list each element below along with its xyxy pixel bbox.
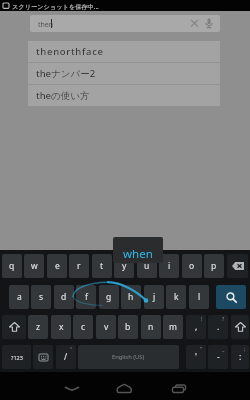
staticText: _ — [222, 346, 225, 353]
button[interactable]: e — [47, 254, 67, 278]
button[interactable]: - — [208, 345, 228, 369]
staticText: ; — [244, 346, 246, 353]
button[interactable]: English (US) — [78, 345, 179, 369]
staticText: e — [55, 260, 60, 272]
button[interactable]: then — [30, 15, 220, 32]
staticText: d — [61, 291, 67, 303]
staticText: " — [200, 346, 203, 353]
staticText: : — [239, 351, 242, 363]
button[interactable] — [216, 285, 246, 309]
button[interactable]: p — [204, 254, 224, 278]
button[interactable]: , — [186, 315, 206, 339]
staticText: ?123 — [11, 354, 23, 361]
staticText: y — [122, 260, 127, 272]
staticText: . — [217, 321, 220, 333]
button[interactable] — [2, 315, 26, 339]
staticText: t — [100, 260, 104, 272]
button[interactable]: m — [163, 315, 183, 339]
button[interactable]: v — [96, 315, 116, 339]
button[interactable]: z — [28, 315, 48, 339]
button[interactable]: ?123 — [2, 345, 31, 369]
staticText: English (US) — [112, 353, 145, 361]
button[interactable]: o — [182, 254, 202, 278]
staticText: / — [64, 351, 68, 363]
button[interactable]: when — [113, 237, 163, 263]
staticText: q — [9, 260, 15, 272]
button[interactable]: / — [56, 345, 76, 369]
staticText: ? — [222, 316, 225, 323]
button[interactable]: . — [208, 315, 228, 339]
staticText: スクリーンショットを保存中... — [12, 2, 99, 10]
button[interactable]: u — [137, 254, 157, 278]
staticText: o — [189, 260, 195, 272]
staticText: v — [104, 321, 109, 333]
button[interactable]: q — [2, 254, 22, 278]
button[interactable] — [166, 372, 194, 400]
button[interactable]: theの使い方 — [28, 85, 220, 106]
button[interactable]: a — [9, 285, 29, 309]
button[interactable]: w — [24, 254, 44, 278]
button[interactable]: g — [99, 285, 119, 309]
button[interactable]: j — [144, 285, 164, 309]
button[interactable]: n — [141, 315, 161, 339]
staticText: x — [59, 321, 64, 333]
button[interactable]: s — [31, 285, 51, 309]
button[interactable]: f — [76, 285, 96, 309]
button[interactable]: : — [231, 345, 249, 369]
staticText: ' — [195, 351, 197, 363]
staticText: h — [128, 291, 134, 303]
button[interactable] — [33, 345, 53, 369]
staticText: , — [195, 321, 198, 333]
button[interactable]: y — [114, 254, 134, 278]
staticText: b — [125, 321, 131, 333]
button[interactable] — [231, 315, 249, 339]
button[interactable]: ' — [186, 345, 206, 369]
staticText: z — [36, 321, 40, 333]
button[interactable]: theナンバー2 — [28, 63, 220, 84]
staticText: thenorthface — [36, 45, 104, 58]
button[interactable]: h — [121, 285, 141, 309]
button[interactable]: t — [92, 254, 112, 278]
staticText: k — [174, 291, 179, 303]
staticText: then — [38, 20, 54, 30]
button[interactable] — [110, 372, 138, 400]
staticText: - — [217, 351, 220, 363]
staticText: c — [81, 321, 86, 333]
staticText: s — [39, 291, 44, 303]
button[interactable]: c — [73, 315, 93, 339]
button[interactable]: d — [54, 285, 74, 309]
staticText: f — [85, 291, 88, 303]
button[interactable]: i — [159, 254, 179, 278]
button[interactable]: l — [189, 285, 209, 309]
staticText: i — [168, 260, 171, 272]
button[interactable]: k — [166, 285, 186, 309]
staticText: w — [31, 260, 38, 272]
staticText: u — [144, 260, 150, 272]
staticText: theの使い方 — [36, 89, 90, 102]
button[interactable] — [227, 254, 248, 278]
staticText: p — [211, 260, 217, 272]
button[interactable]: r — [69, 254, 89, 278]
staticText: m — [169, 321, 177, 333]
button[interactable] — [58, 372, 86, 400]
button[interactable]: x — [51, 315, 71, 339]
staticText: ° — [70, 346, 73, 353]
staticText: g — [106, 291, 112, 303]
staticText: r — [77, 260, 81, 272]
staticText: l — [198, 291, 201, 303]
staticText: ! — [201, 316, 203, 323]
staticText: a — [17, 291, 22, 303]
staticText: n — [148, 321, 154, 333]
staticText: when — [123, 246, 153, 262]
button[interactable]: b — [118, 315, 138, 339]
button[interactable]: thenorthface — [28, 41, 220, 62]
staticText: j — [153, 291, 156, 303]
staticText: theナンバー2 — [36, 67, 96, 80]
